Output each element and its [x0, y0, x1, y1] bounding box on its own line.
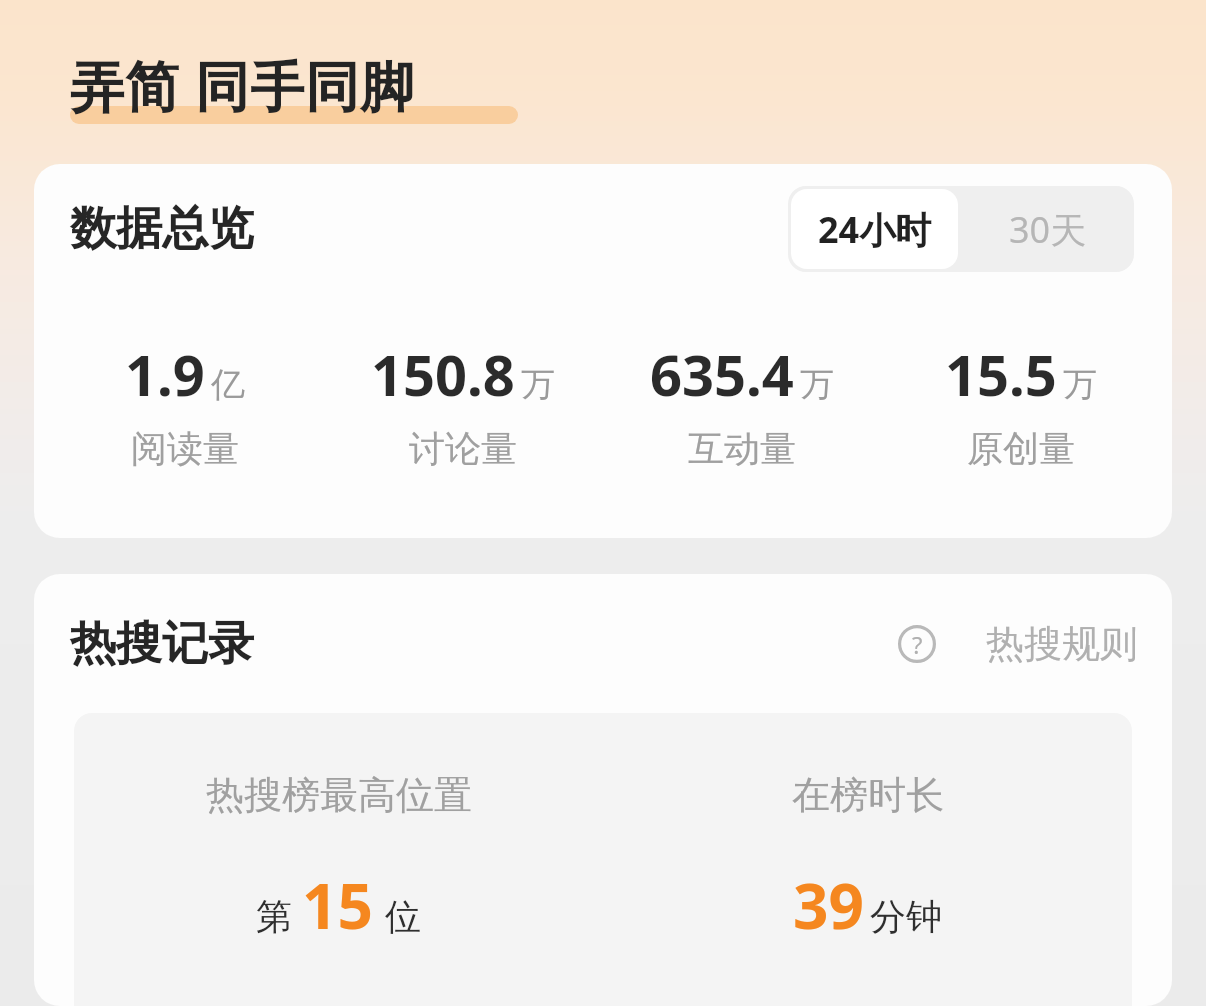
staticText: 15 [302, 863, 373, 947]
staticText: 第 [256, 894, 292, 939]
staticText: 数据总览 [70, 200, 254, 258]
staticText: 150.8 [371, 336, 515, 412]
button[interactable]: 1.9 [46, 336, 324, 471]
button[interactable]: 635.4 [602, 336, 881, 471]
button[interactable]: 24小时 [791, 189, 958, 269]
staticText: 位 [385, 894, 421, 939]
staticText: 讨论量 [409, 426, 517, 471]
staticText: 万 [1063, 363, 1097, 406]
staticText: 30天 [1009, 205, 1087, 254]
button[interactable]: 15.5 [881, 336, 1160, 471]
staticText: 阅读量 [131, 426, 239, 471]
staticText: 热搜榜最高位置 [206, 771, 472, 819]
staticText: 弄简 同手同脚 [70, 48, 416, 122]
staticText: 万 [521, 363, 555, 406]
staticText: 24小时 [818, 205, 932, 254]
staticText: 1.9 [125, 336, 205, 412]
staticText: 635.4 [650, 336, 794, 412]
staticText: 15.5 [945, 336, 1057, 412]
staticText: 万 [800, 363, 834, 406]
staticText: 热搜记录 [70, 615, 254, 673]
staticText: 互动量 [688, 426, 796, 471]
staticText: 亿 [211, 363, 245, 406]
other: 热搜规则说明 [898, 625, 936, 663]
staticText: 热搜规则 [986, 620, 1138, 668]
button[interactable]: 150.8 [324, 336, 602, 471]
staticText: 原创量 [967, 426, 1075, 471]
button[interactable]: 热搜规则说明 [892, 614, 1144, 674]
staticText: 在榜时长 [792, 771, 944, 819]
button[interactable]: 30天 [961, 186, 1134, 272]
staticText: 分钟 [870, 894, 942, 939]
staticText: ? [912, 628, 923, 661]
staticText: 39 [793, 863, 864, 947]
